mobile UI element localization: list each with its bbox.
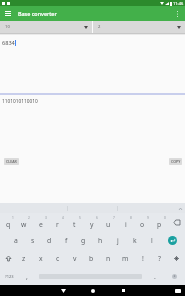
button[interactable]: Home — [86, 285, 100, 296]
staticText: 6 — [96, 216, 98, 220]
button[interactable]: Back — [56, 285, 70, 296]
button[interactable]: CLEAR — [4, 158, 19, 165]
button[interactable]: 8 — [117, 213, 134, 231]
button[interactable]: c — [49, 249, 66, 267]
staticText: CLEAR — [6, 159, 17, 164]
button[interactable]: n — [100, 249, 117, 267]
button[interactable]: 6 — [83, 213, 100, 231]
staticText: 5 — [79, 216, 81, 220]
staticText: . — [154, 272, 156, 281]
staticText: z — [22, 254, 26, 263]
staticText: h — [98, 236, 103, 245]
button[interactable]: h — [92, 231, 109, 249]
staticText: t — [73, 220, 76, 229]
button[interactable]: j — [109, 231, 126, 249]
button[interactable]: 4 — [49, 213, 66, 231]
button[interactable]: Expand suggestions — [178, 206, 183, 211]
button[interactable]: Enter — [160, 231, 185, 249]
button[interactable]: a — [7, 231, 24, 249]
button[interactable]: 7 — [100, 213, 117, 231]
staticText: COPY — [171, 159, 181, 164]
staticText: p — [157, 220, 162, 229]
staticText: 0 — [164, 216, 166, 220]
button[interactable]: Shift — [0, 249, 16, 267]
button[interactable]: s — [24, 231, 41, 249]
staticText: 2 — [28, 216, 30, 220]
button[interactable]: ! — [134, 249, 151, 267]
staticText: i — [125, 220, 127, 229]
button[interactable]: 0 — [151, 213, 168, 231]
staticText: b — [89, 254, 94, 263]
button[interactable]: d — [41, 231, 58, 249]
staticText: s — [31, 236, 35, 245]
button[interactable]: b — [83, 249, 100, 267]
staticText: 6834 — [2, 39, 15, 47]
staticText: Base converter — [18, 10, 57, 17]
staticText: n — [106, 254, 111, 263]
staticText: 8 — [130, 216, 132, 220]
staticText: ! — [142, 254, 144, 263]
button[interactable]: , — [18, 267, 35, 285]
staticText: v — [73, 254, 77, 263]
staticText: w — [21, 220, 27, 229]
button[interactable]: COPY — [169, 158, 182, 165]
staticText: 11:46 — [173, 1, 184, 6]
staticText: a — [14, 236, 18, 245]
button[interactable]: Space — [35, 267, 146, 285]
staticText: 4 — [62, 216, 64, 220]
button[interactable]: Emoji — [168, 249, 185, 267]
staticText: y — [90, 220, 94, 229]
button[interactable]: More options — [170, 6, 185, 21]
staticText: d — [47, 236, 52, 245]
staticText: 1101010110010 — [2, 98, 38, 105]
staticText: r — [56, 220, 59, 229]
button[interactable]: 9 — [134, 213, 151, 231]
button[interactable]: 2 — [93, 21, 185, 33]
button[interactable]: f — [58, 231, 75, 249]
button[interactable]: 1 — [0, 213, 16, 231]
staticText: q — [6, 220, 11, 229]
button[interactable]: k — [126, 231, 143, 249]
button[interactable]: g — [75, 231, 92, 249]
staticText: ? — [158, 254, 161, 263]
staticText: m — [122, 254, 129, 263]
button[interactable]: Voice input — [163, 267, 185, 285]
staticText: u — [106, 220, 111, 229]
button[interactable]: Backspace — [168, 213, 185, 231]
staticText: k — [133, 236, 137, 245]
button[interactable]: z — [16, 249, 32, 267]
button[interactable]: m — [117, 249, 134, 267]
staticText: o — [140, 220, 145, 229]
button[interactable]: . — [146, 267, 163, 285]
staticText: 9 — [147, 216, 149, 220]
button[interactable]: Switch keyboard — [173, 286, 182, 295]
staticText: ?123 — [5, 274, 14, 279]
staticText: 1 — [12, 216, 14, 220]
staticText: , — [26, 272, 28, 281]
staticText: 2 — [98, 24, 101, 30]
staticText: 7 — [113, 216, 115, 220]
staticText: l — [151, 236, 153, 245]
button[interactable]: v — [66, 249, 83, 267]
staticText: j — [117, 236, 119, 245]
button[interactable]: 10 — [0, 21, 92, 33]
staticText: f — [65, 236, 68, 245]
button[interactable]: 5 — [66, 213, 83, 231]
button[interactable]: Recent apps — [116, 285, 130, 296]
staticText: 10 — [5, 24, 10, 30]
button[interactable]: Open navigation drawer — [0, 6, 15, 21]
staticText: g — [81, 236, 86, 245]
button[interactable]: 2 — [16, 213, 32, 231]
staticText: x — [39, 254, 43, 263]
button[interactable]: ? — [151, 249, 168, 267]
button[interactable]: 3 — [32, 213, 49, 231]
staticText: c — [56, 254, 60, 263]
staticText: 3 — [45, 216, 47, 220]
button[interactable]: l — [143, 231, 160, 249]
staticText: e — [39, 220, 43, 229]
button[interactable]: ?123 — [0, 267, 18, 285]
button[interactable]: x — [32, 249, 49, 267]
